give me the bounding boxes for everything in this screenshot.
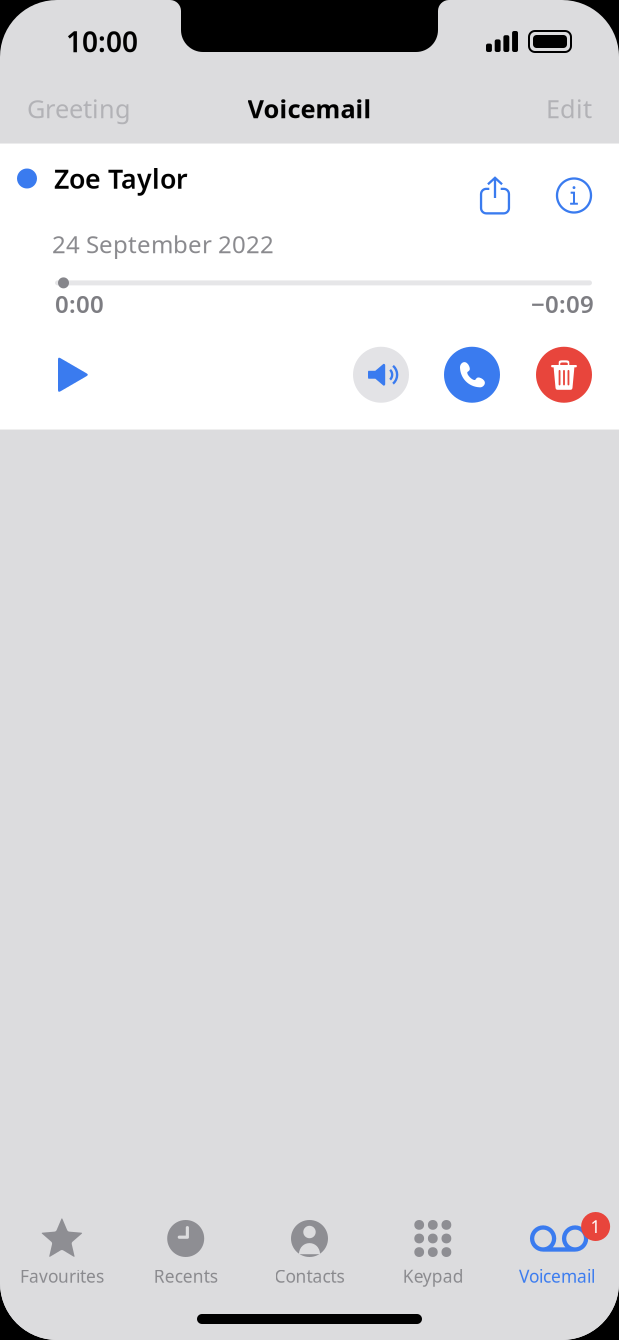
staticText: 24 September 2022 (52, 228, 274, 260)
button[interactable]: Call back (444, 347, 500, 403)
staticText: Keypad (403, 1264, 464, 1287)
button[interactable]: Contacts (248, 1219, 371, 1287)
button[interactable]: Delete (536, 347, 592, 403)
staticText: Contacts (274, 1264, 344, 1287)
staticText: 0:00 (55, 288, 104, 320)
staticText: Zoe Taylor (54, 161, 188, 196)
button[interactable]: Keypad (371, 1219, 495, 1287)
staticText: Edit (546, 92, 592, 125)
staticText: 1 (591, 1215, 601, 1238)
button[interactable]: Greeting (0, 82, 158, 135)
button[interactable]: Edit (519, 82, 619, 135)
staticText: Greeting (27, 92, 131, 125)
button[interactable]: Speaker (353, 347, 409, 403)
staticText: −0:09 (531, 288, 594, 320)
staticText: Voicemail (519, 1264, 595, 1287)
button[interactable]: Details (544, 167, 604, 223)
button[interactable]: Recents (124, 1219, 248, 1287)
button[interactable]: Play (44, 347, 103, 403)
staticText: 10:00 (66, 23, 138, 60)
button[interactable]: 1 (495, 1219, 619, 1287)
button[interactable]: Favourites (0, 1219, 124, 1287)
staticText: Recents (154, 1264, 218, 1287)
staticText: Voicemail (247, 92, 371, 125)
button[interactable]: Share (464, 167, 544, 223)
staticText: Favourites (20, 1264, 104, 1287)
